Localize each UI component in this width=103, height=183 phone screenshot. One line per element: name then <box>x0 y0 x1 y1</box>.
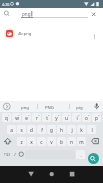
staticText: png <box>22 11 31 17</box>
button[interactable]: l <box>87 125 96 134</box>
staticText: a <box>10 127 13 133</box>
button[interactable]: y <box>52 113 61 122</box>
button[interactable]: i <box>72 113 81 122</box>
staticText: y <box>55 115 58 121</box>
staticText: . <box>80 152 82 158</box>
button[interactable]: r <box>32 113 41 122</box>
button[interactable] <box>0 8 103 22</box>
staticText: k <box>80 127 83 133</box>
staticText: w <box>15 115 19 121</box>
staticText: s <box>20 127 23 133</box>
button[interactable]: g <box>47 125 56 134</box>
staticText: 4b.png <box>18 31 32 36</box>
button[interactable]: o <box>82 113 91 122</box>
button[interactable]: b <box>57 137 66 146</box>
staticText: c <box>40 139 43 145</box>
button[interactable]: f <box>37 125 46 134</box>
staticText: 0 <box>98 113 100 116</box>
staticText: e <box>25 115 28 121</box>
button[interactable] <box>45 168 57 180</box>
staticText: o <box>85 115 88 121</box>
button[interactable]: u <box>62 113 71 122</box>
button[interactable] <box>24 168 36 180</box>
staticText: u <box>65 115 68 121</box>
staticText: r <box>36 115 38 121</box>
button[interactable]: z <box>17 137 26 146</box>
button[interactable]: q <box>2 113 11 122</box>
staticText: 5 <box>48 113 50 116</box>
staticText: n <box>70 139 73 145</box>
button[interactable]: c <box>37 137 46 146</box>
button[interactable]: n <box>67 137 76 146</box>
button[interactable] <box>19 150 25 159</box>
staticText: 1 <box>8 113 10 116</box>
staticText: i <box>76 115 78 121</box>
button[interactable]: t <box>42 113 51 122</box>
staticText: b <box>60 139 63 145</box>
staticText: 8 <box>78 113 80 116</box>
button[interactable]: e <box>22 113 31 122</box>
button[interactable]: w <box>12 113 21 122</box>
button[interactable]: p <box>92 113 101 122</box>
staticText: 2 <box>18 113 20 116</box>
staticText: ?123 <box>4 153 11 157</box>
button[interactable]: ?123 <box>2 150 12 159</box>
staticText: t <box>46 115 48 121</box>
staticText: v <box>50 139 53 145</box>
staticText: PNG <box>45 104 54 110</box>
staticText: j <box>71 127 73 133</box>
staticText: 3 <box>28 113 30 116</box>
button[interactable]: a <box>7 125 16 134</box>
button[interactable]: h <box>57 125 66 134</box>
staticText: x <box>30 139 33 145</box>
staticText: g <box>50 127 53 133</box>
staticText: l <box>91 127 93 133</box>
staticText: 4 <box>38 113 40 116</box>
button[interactable] <box>0 25 103 42</box>
button[interactable] <box>66 168 78 180</box>
staticText: q <box>5 115 8 121</box>
staticText: 6 <box>58 113 60 116</box>
staticText: pig <box>76 104 83 110</box>
button[interactable] <box>88 137 102 146</box>
staticText: f <box>41 127 43 133</box>
button[interactable]: . <box>76 150 85 159</box>
staticText: png <box>21 104 29 110</box>
button[interactable] <box>68 101 92 112</box>
button[interactable] <box>2 137 15 146</box>
button[interactable]: d <box>27 125 36 134</box>
staticText: / <box>14 152 16 157</box>
button[interactable]: x <box>27 137 36 146</box>
button[interactable] <box>88 153 99 164</box>
button[interactable]: j <box>67 125 76 134</box>
button[interactable]: k <box>77 125 86 134</box>
button[interactable] <box>37 101 68 112</box>
staticText: 7 <box>68 113 70 116</box>
staticText: h <box>60 127 63 133</box>
staticText: p <box>95 115 98 121</box>
button[interactable]: m <box>77 137 86 146</box>
button[interactable] <box>12 101 37 112</box>
button[interactable]: s <box>17 125 26 134</box>
staticText: z <box>20 139 23 145</box>
button[interactable]: / <box>12 150 18 159</box>
button[interactable]: v <box>47 137 56 146</box>
staticText: 9 <box>88 113 90 116</box>
staticText: d <box>30 127 33 133</box>
staticText: m <box>79 139 84 145</box>
staticText: 4:26 <box>2 2 10 7</box>
